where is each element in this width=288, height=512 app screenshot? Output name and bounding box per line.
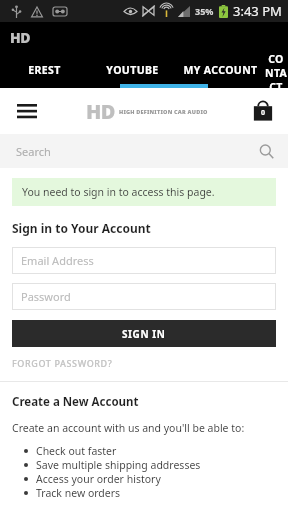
button[interactable]: Password	[12, 283, 276, 310]
staticText: Sign in to Your Account	[12, 220, 151, 236]
staticText: CONTACT	[264, 52, 288, 88]
button[interactable]: Search	[0, 134, 288, 168]
button[interactable]: Open menu	[12, 96, 42, 126]
staticText: Password	[21, 289, 71, 304]
staticText: Track new orders	[36, 486, 121, 500]
other: Search	[259, 144, 274, 159]
button[interactable]: SIGN IN	[12, 320, 276, 347]
staticText: FORGOT PASSWORD?	[12, 357, 113, 369]
staticText: Email Address	[21, 253, 94, 268]
button[interactable]: EREST	[0, 52, 88, 88]
staticText: Access your order history	[36, 472, 161, 486]
staticText: YOUTUBE	[106, 63, 159, 77]
button[interactable]: MY ACCOUNT	[176, 52, 264, 88]
button[interactable]: Shopping cart, 0 items	[250, 98, 276, 124]
staticText: HD	[10, 28, 30, 47]
staticText: EREST	[28, 63, 61, 77]
button[interactable]: Email Address	[12, 247, 276, 274]
staticText: You need to sign in to access this page.	[22, 185, 215, 199]
staticText: Create a New Account	[12, 394, 139, 410]
staticText: Search	[16, 144, 51, 159]
staticText: 0	[261, 108, 266, 118]
staticText: HIGH DEFINITION CAR AUDIO	[119, 108, 208, 115]
staticText: 35%	[195, 5, 214, 17]
button[interactable]: FORGOT PASSWORD?	[12, 357, 113, 369]
staticText: HD	[86, 98, 115, 125]
staticText: 3:43 PM	[233, 2, 282, 20]
staticText: Create an account with us and you'll be …	[12, 421, 245, 435]
button[interactable]: YOUTUBE	[88, 52, 176, 88]
staticText: SIGN IN	[122, 327, 166, 341]
button[interactable]: CONTACT	[264, 52, 288, 88]
staticText: MY ACCOUNT	[183, 63, 258, 77]
staticText: Check out faster	[36, 444, 117, 458]
staticText: Save multiple shipping addresses	[36, 458, 201, 472]
